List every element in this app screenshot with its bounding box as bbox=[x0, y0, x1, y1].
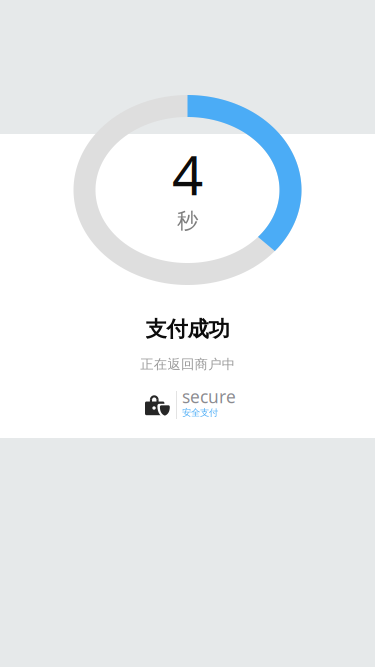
staticText: 安全支付 bbox=[182, 407, 218, 418]
staticText: secure bbox=[182, 385, 236, 408]
staticText: 支付成功 bbox=[145, 316, 229, 342]
staticText: 秒 bbox=[177, 208, 198, 234]
staticText: 正在返回商户中 bbox=[140, 356, 235, 372]
staticText: 4 bbox=[172, 138, 203, 210]
